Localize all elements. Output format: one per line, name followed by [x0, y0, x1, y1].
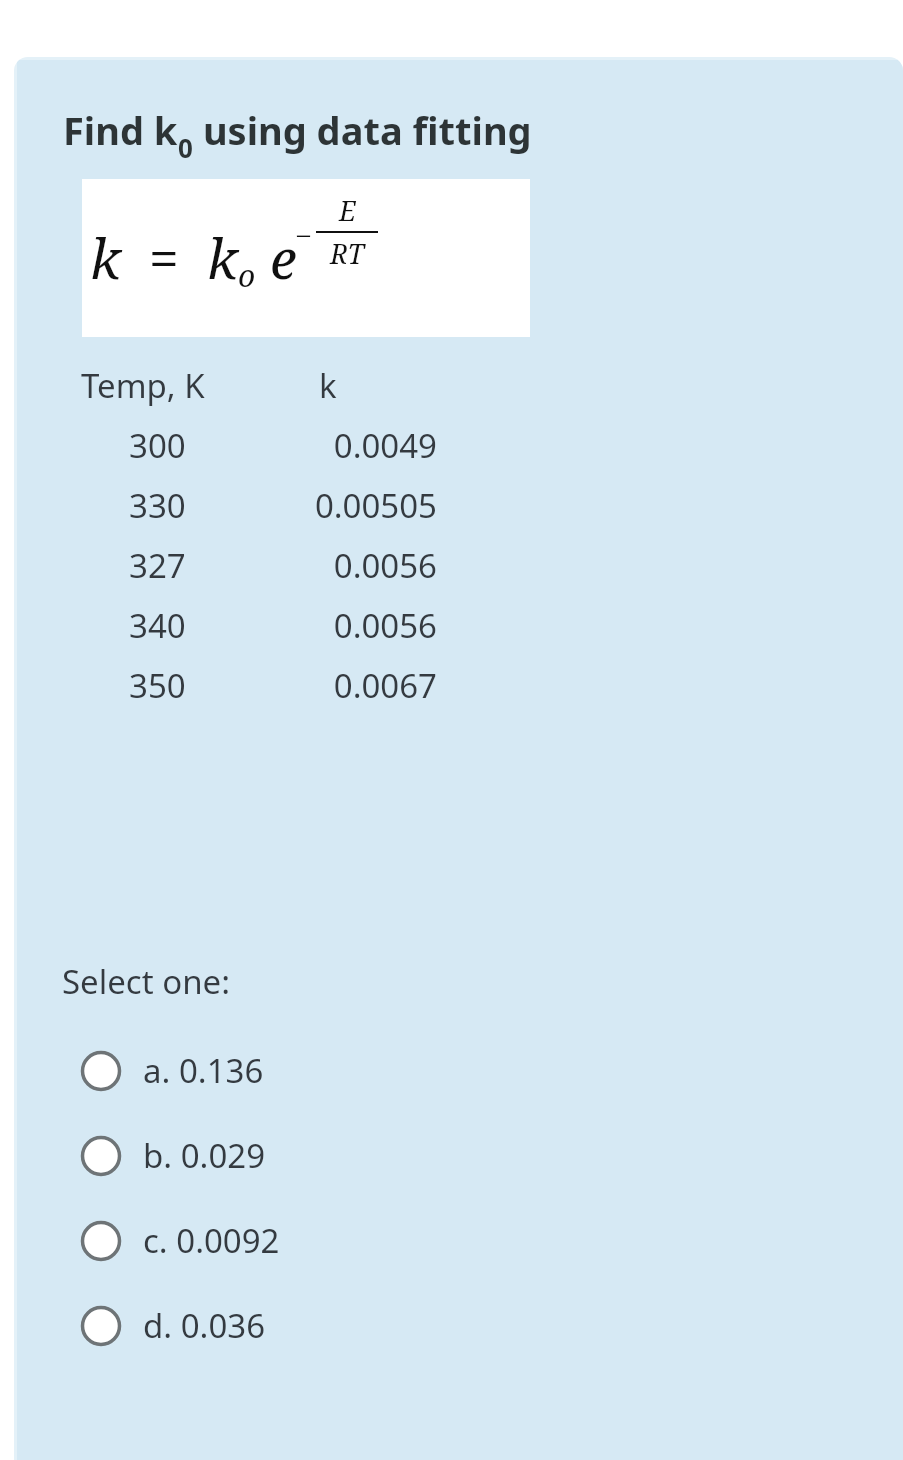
staticText: 0.0067	[333, 663, 437, 708]
staticText: Find k	[63, 104, 178, 156]
staticText: a. 0.136	[143, 1048, 264, 1093]
staticText: o	[238, 255, 256, 296]
staticText: d. 0.036	[143, 1303, 266, 1348]
button[interactable]: a. 0.136	[17, 1028, 903, 1113]
staticText: 340	[129, 603, 186, 648]
staticText: 330	[129, 483, 186, 528]
staticText: b. 0.029	[143, 1133, 266, 1178]
staticText: 0.0056	[333, 603, 437, 648]
staticText: 300	[129, 423, 186, 468]
staticText: using data fitting	[193, 104, 532, 156]
staticText: 0.00505	[314, 483, 437, 528]
staticText: RT	[330, 235, 364, 272]
staticText: 327	[129, 543, 186, 588]
staticText: k	[319, 363, 337, 408]
staticText: 0.0056	[333, 543, 437, 588]
staticText: e	[256, 221, 297, 295]
staticText: 350	[129, 663, 186, 708]
button[interactable]: d. 0.036	[17, 1283, 903, 1368]
staticText: c. 0.0092	[143, 1218, 280, 1263]
staticText: 0.0049	[333, 423, 437, 468]
staticText: E	[339, 192, 356, 229]
staticText: –	[297, 215, 311, 250]
staticText: Temp, K	[81, 363, 205, 408]
staticText: Select one:	[62, 959, 231, 1004]
staticText: k = k	[90, 221, 238, 295]
button[interactable]: b. 0.029	[17, 1113, 903, 1198]
staticText: 0	[178, 130, 193, 165]
button[interactable]: c. 0.0092	[17, 1198, 903, 1283]
